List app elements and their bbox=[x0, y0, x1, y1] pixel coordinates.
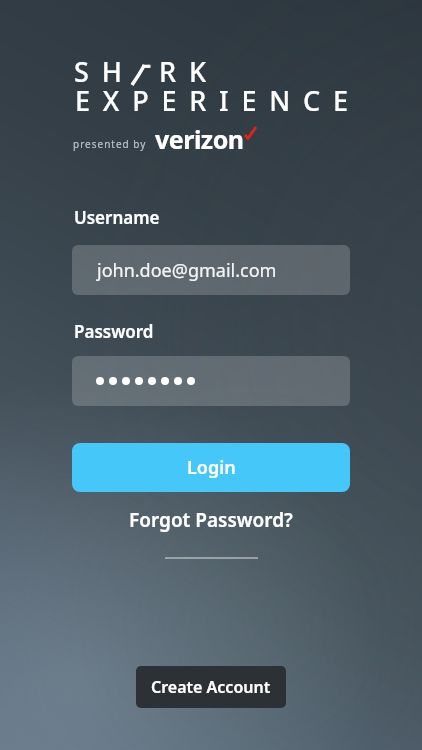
button[interactable]: Forgot Password? bbox=[129, 507, 293, 533]
button[interactable] bbox=[72, 356, 350, 406]
staticText: Username bbox=[74, 206, 160, 229]
staticText: Login bbox=[187, 455, 236, 480]
button[interactable]: john.doe@gmail.com bbox=[72, 245, 350, 295]
staticText: EXPERIENCE bbox=[75, 82, 361, 119]
staticText: SH bbox=[74, 53, 136, 90]
staticText: RK bbox=[159, 53, 220, 90]
staticText: john.doe@gmail.com bbox=[97, 258, 277, 283]
button[interactable]: Create Account bbox=[136, 666, 286, 708]
staticText: Create Account bbox=[151, 676, 271, 698]
staticText: verizon bbox=[155, 122, 244, 156]
button[interactable]: Login bbox=[72, 443, 350, 492]
staticText: presented by bbox=[73, 137, 147, 151]
staticText: Password bbox=[74, 320, 154, 343]
